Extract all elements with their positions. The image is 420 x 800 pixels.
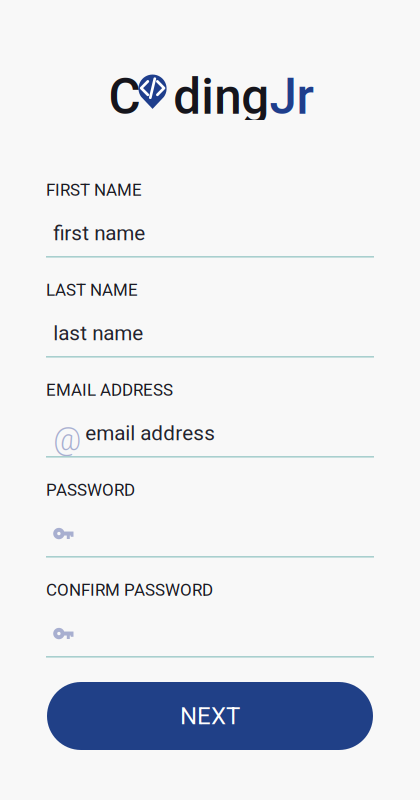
button[interactable]: EMAIL ADDRESS [46,378,374,478]
button[interactable]: PASSWORD [46,478,374,578]
button[interactable]: CONFIRM PASSWORD [46,578,374,678]
staticText: NEXT [180,702,240,730]
staticText: last name [53,321,143,345]
staticText: C [108,68,140,126]
staticText: PASSWORD [46,480,135,500]
staticText: FIRST NAME [46,180,142,200]
button[interactable]: FIRST NAME [46,178,374,278]
button[interactable]: NEXT [47,682,373,750]
staticText: email address [85,421,215,445]
staticText: Jr [269,68,313,126]
staticText: @ [53,422,81,458]
staticText: EMAIL ADDRESS [46,380,173,400]
button[interactable]: LAST NAME [46,278,374,378]
staticText: CONFIRM PASSWORD [46,580,213,600]
staticText: ding [173,68,269,126]
staticText: first name [53,221,145,245]
staticText: LAST NAME [46,280,138,300]
